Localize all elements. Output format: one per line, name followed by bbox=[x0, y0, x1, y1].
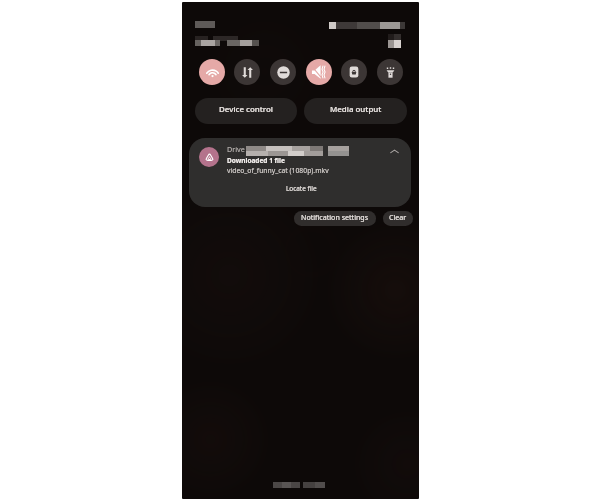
button[interactable]: Drive bbox=[189, 138, 411, 207]
staticText: Clear bbox=[389, 212, 407, 222]
staticText: Downloaded 1 file bbox=[227, 156, 285, 165]
staticText: video_of_funny_cat (1080p).mkv bbox=[227, 166, 329, 175]
button[interactable]: Sound mode: mute and vibrate bbox=[306, 59, 332, 85]
button[interactable]: Flashlight bbox=[377, 59, 403, 85]
button[interactable]: Clear bbox=[383, 211, 413, 226]
button[interactable]: Notification settings bbox=[294, 211, 376, 226]
button[interactable]: Media output bbox=[304, 98, 407, 124]
button[interactable]: Auto rotate lock bbox=[341, 59, 367, 85]
staticText: Media output bbox=[330, 104, 382, 115]
button[interactable]: Mobile data bbox=[234, 59, 260, 85]
staticText: Notification settings bbox=[301, 212, 369, 222]
staticText: Device control bbox=[219, 104, 273, 115]
button[interactable]: Collapse notification bbox=[387, 144, 401, 158]
button[interactable]: Wi-Fi bbox=[199, 59, 225, 85]
button[interactable]: Device control bbox=[195, 98, 297, 124]
button[interactable]: Do not disturb bbox=[270, 59, 296, 85]
staticText: Locate file bbox=[286, 184, 317, 193]
button[interactable]: Locate file bbox=[284, 183, 318, 193]
staticText: Drive bbox=[227, 144, 245, 154]
